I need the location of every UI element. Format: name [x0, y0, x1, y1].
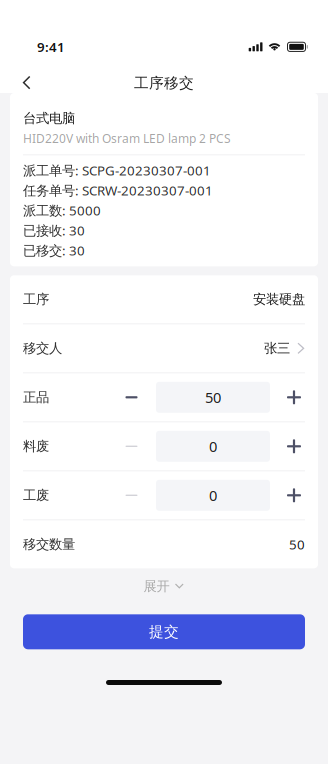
staticText: 派工数: 5000 — [23, 201, 101, 219]
staticText: 工序移交 — [134, 74, 194, 92]
staticText: 50 — [289, 535, 305, 553]
button[interactable]: 提交 — [23, 614, 305, 649]
staticText: 9:41 — [37, 38, 65, 56]
button[interactable]: Increase 正品 — [270, 382, 318, 413]
staticText: 工序 — [23, 291, 49, 307]
button[interactable]: 移交人 — [10, 324, 318, 372]
staticText: 任务单号: SCRW-20230307-001 — [23, 181, 213, 199]
button[interactable]: Increase 工废 — [270, 480, 318, 511]
staticText: 展开 — [143, 578, 169, 594]
staticText: 0 — [209, 437, 217, 456]
staticText: 已接收: 30 — [23, 221, 85, 239]
staticText: 工废 — [23, 487, 49, 503]
staticText: 料废 — [23, 438, 49, 454]
staticText: 移交数量 — [23, 536, 75, 552]
staticText: 正品 — [23, 389, 49, 405]
button[interactable]: Decrease 正品 — [107, 382, 156, 413]
staticText: 台式电脑 — [23, 110, 75, 126]
staticText: 提交 — [149, 623, 179, 641]
staticText: 已移交: 30 — [23, 241, 85, 259]
staticText: HID220V with Osram LED lamp 2 PCS — [23, 130, 231, 146]
button[interactable]: Increase 料废 — [270, 431, 318, 462]
staticText: 安装硬盘 — [253, 291, 305, 307]
button[interactable]: Back — [10, 66, 44, 100]
staticText: 50 — [205, 388, 221, 407]
staticText: 张三 — [264, 340, 290, 356]
staticText: 派工单号: SCPG-20230307-001 — [23, 161, 211, 179]
staticText: 0 — [209, 486, 217, 505]
staticText: 移交人 — [23, 340, 62, 356]
button[interactable]: 展开 — [0, 568, 328, 604]
button[interactable]: Decrease 工废 — [107, 480, 156, 511]
button[interactable]: Decrease 料废 — [107, 431, 156, 462]
